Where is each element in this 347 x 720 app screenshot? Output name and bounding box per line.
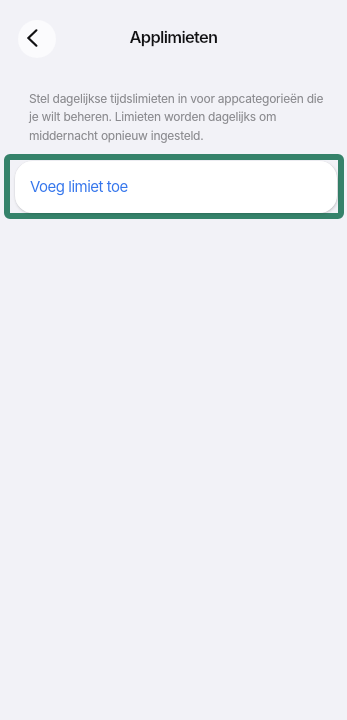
staticText: Stel dagelijkse tijdslimieten in voor ap…: [29, 91, 324, 143]
staticText: Voeg limiet toe: [30, 177, 128, 195]
button[interactable]: [18, 20, 56, 58]
button[interactable]: Voeg limiet toe: [15, 161, 337, 213]
staticText: Applimieten: [0, 27, 347, 47]
